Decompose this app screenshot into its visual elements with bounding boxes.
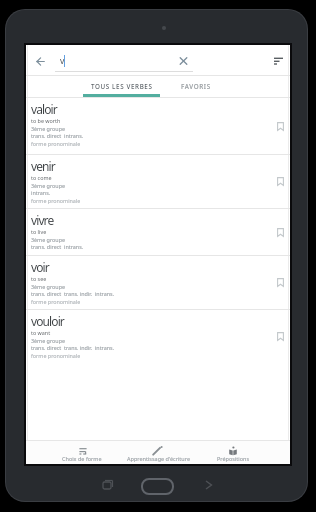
button[interactable]: valoir (26, 98, 290, 154)
staticText: Prépositions (217, 455, 250, 462)
button[interactable]: voir (26, 256, 290, 309)
staticText: forme pronominale (31, 140, 81, 147)
staticText: trans. direct intrans. (31, 243, 84, 250)
staticText: to see (31, 275, 47, 282)
button[interactable] (273, 329, 287, 344)
staticText: to live (31, 228, 47, 235)
button[interactable]: TOUS LES VERBES (83, 76, 160, 97)
button[interactable] (273, 275, 287, 290)
button[interactable]: Prépositions (195, 441, 271, 464)
staticText: vouloir (31, 313, 64, 329)
staticText: 3ème groupe (31, 236, 65, 243)
staticText: trans. direct trans. indir. intrans. (31, 290, 115, 297)
button[interactable]: Choix de forme (44, 441, 120, 464)
button[interactable]: vouloir (26, 310, 290, 363)
staticText: 3ème groupe (31, 182, 65, 189)
staticText: voir (31, 259, 49, 275)
staticText: valoir (31, 101, 57, 117)
staticText: to come (31, 174, 52, 181)
staticText: forme pronominale (31, 352, 81, 359)
button[interactable]: FAVORIS (157, 76, 234, 97)
staticText: v (60, 55, 65, 67)
staticText: intrans. (31, 189, 51, 196)
staticText: venir (31, 158, 55, 174)
staticText: 3ème groupe (31, 337, 65, 344)
button[interactable] (175, 53, 192, 69)
button[interactable] (273, 225, 287, 240)
button[interactable] (270, 53, 286, 67)
staticText: 3ème groupe (31, 125, 65, 132)
staticText: trans. direct trans. indir. intrans. (31, 344, 115, 351)
staticText: to be worth (31, 117, 61, 124)
staticText: forme pronominale (31, 197, 81, 204)
staticText: TOUS LES VERBES (91, 82, 153, 91)
staticText: trans. direct intrans. (31, 132, 84, 139)
staticText: 3ème groupe (31, 283, 65, 290)
button[interactable]: venir (26, 155, 290, 208)
button[interactable] (32, 53, 50, 69)
staticText: forme pronominale (31, 298, 81, 305)
button[interactable]: vivre (26, 209, 290, 255)
staticText: vivre (31, 212, 54, 228)
staticText: Apprentissage d'écriture (127, 455, 190, 462)
staticText: to want (31, 329, 51, 336)
staticText: FAVORIS (181, 82, 211, 91)
staticText: Choix de forme (62, 455, 102, 462)
button[interactable]: Apprentissage d'écriture (120, 441, 196, 464)
button[interactable] (273, 174, 287, 189)
button[interactable] (273, 119, 287, 134)
